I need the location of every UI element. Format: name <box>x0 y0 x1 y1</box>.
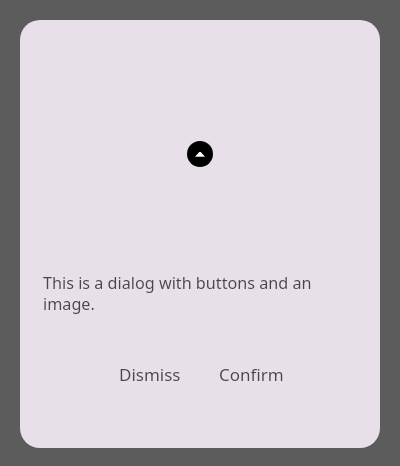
button[interactable]: Dismiss <box>107 354 193 394</box>
other: Image <box>187 141 213 167</box>
staticText: This is a dialog with buttons and an ima… <box>43 272 357 314</box>
staticText: Confirm <box>219 363 284 386</box>
button[interactable]: Confirm <box>207 354 296 394</box>
staticText: Dismiss <box>119 363 181 386</box>
